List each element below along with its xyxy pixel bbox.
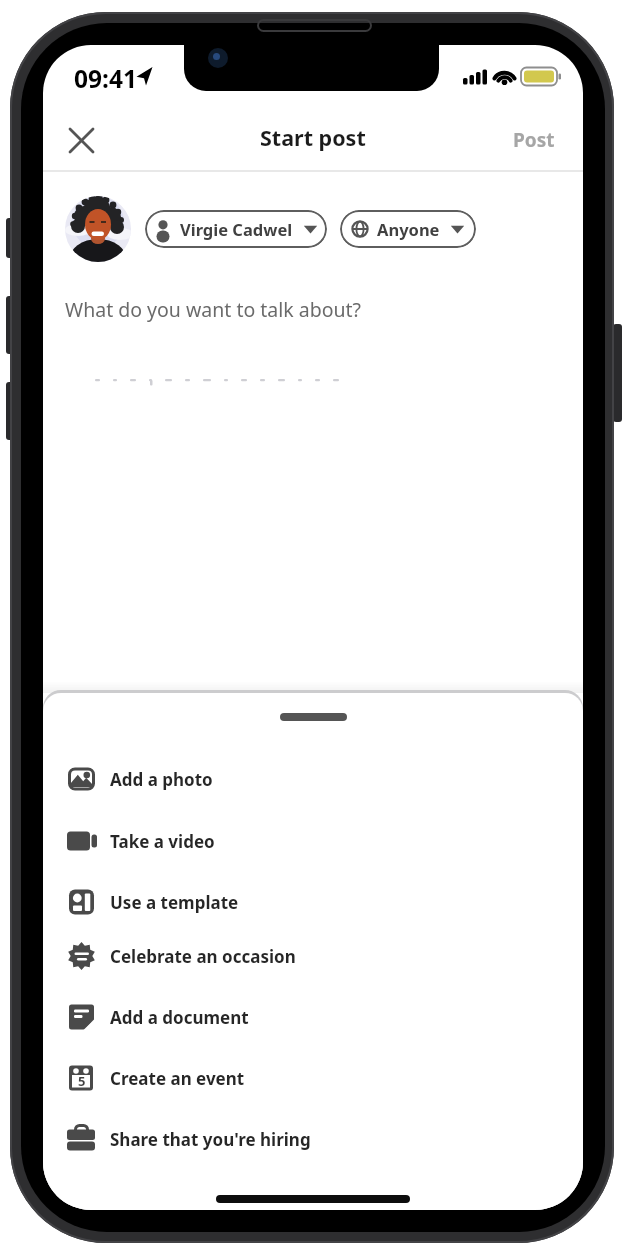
staticText: Start post <box>260 123 366 152</box>
button[interactable]: Add a photo <box>43 749 583 809</box>
button[interactable]: Celebrate an occasion <box>43 926 583 986</box>
button[interactable]: Virgie Cadwel <box>145 210 327 248</box>
staticText: Celebrate an occasion <box>110 945 296 968</box>
staticText: Anyone <box>377 218 440 240</box>
staticText: Create an event <box>110 1067 245 1090</box>
button[interactable] <box>280 713 347 721</box>
staticText: Add a photo <box>110 768 213 791</box>
button[interactable]: Add a document <box>43 987 583 1047</box>
staticText: Add a document <box>110 1006 249 1029</box>
staticText: Share that you're hiring <box>110 1128 311 1151</box>
staticText: Virgie Cadwel <box>180 218 293 240</box>
button[interactable] <box>63 122 99 158</box>
button[interactable]: Use a template <box>43 872 583 932</box>
button[interactable]: Take a video <box>43 811 583 871</box>
staticText: Use a template <box>110 891 239 914</box>
button[interactable]: Anyone <box>340 210 476 248</box>
staticText: 09:41 <box>74 62 137 95</box>
button[interactable]: Share that you're hiring <box>43 1109 583 1169</box>
staticText: Take a video <box>110 830 215 853</box>
staticText: 5 <box>78 1072 86 1090</box>
button[interactable]: 5 <box>43 1048 583 1108</box>
button[interactable]: Post <box>443 120 555 160</box>
staticText: What do you want to talk about? <box>65 296 362 323</box>
staticText: Post <box>513 127 555 153</box>
